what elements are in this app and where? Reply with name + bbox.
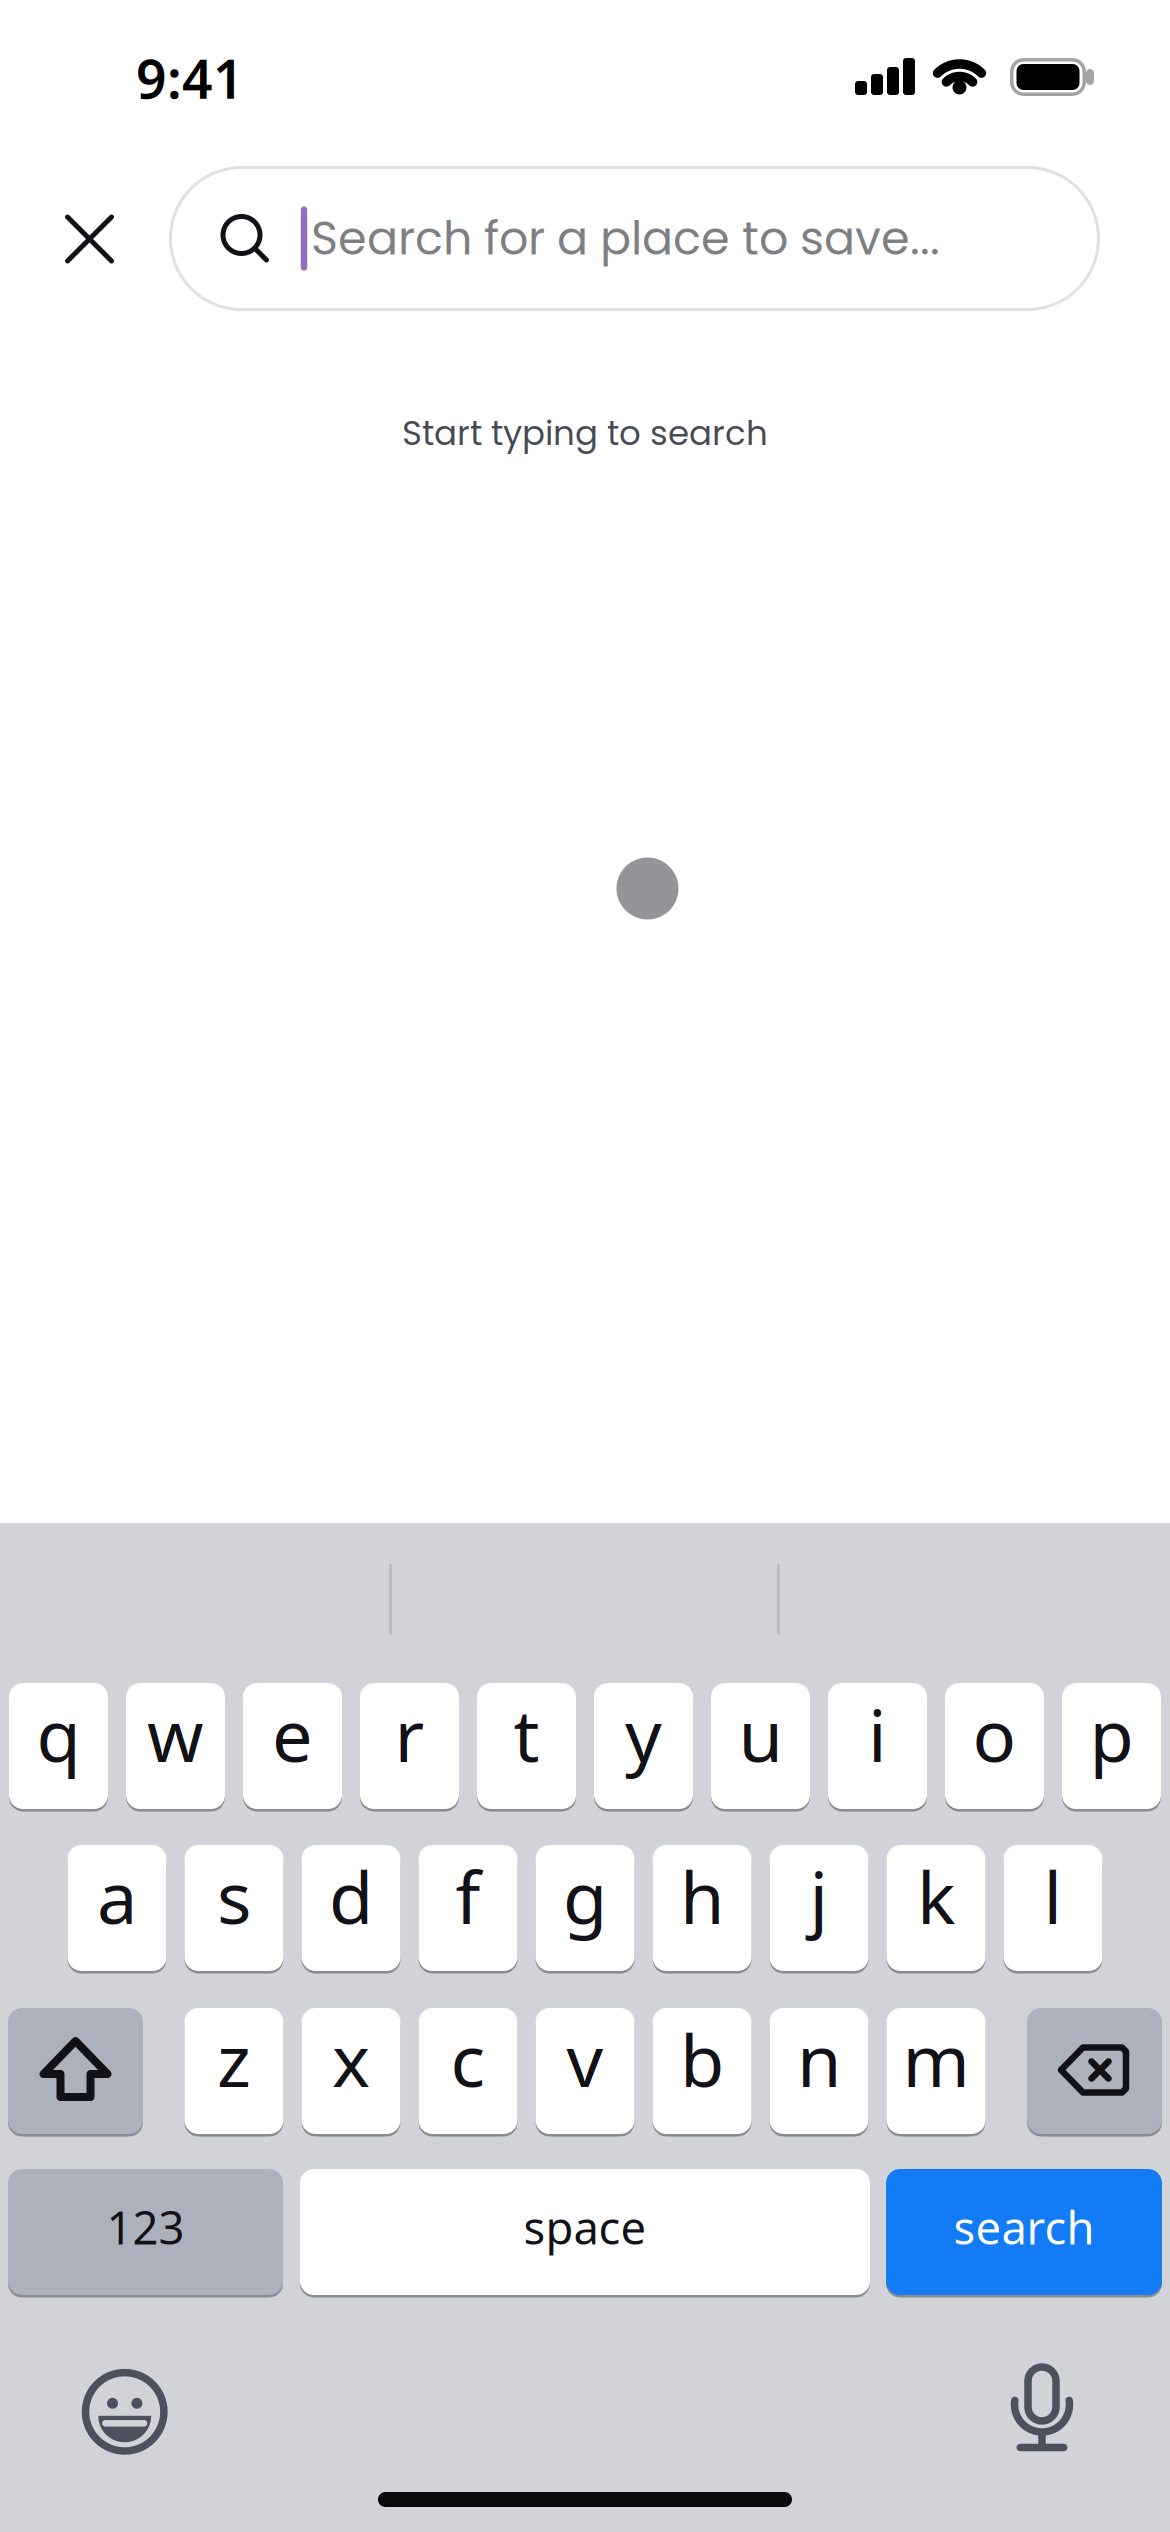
staticText: j <box>809 1848 828 1944</box>
button[interactable]: space <box>300 2167 870 2296</box>
staticText: b <box>680 2011 724 2107</box>
button[interactable]: j <box>769 1843 868 1972</box>
staticText: Search for a place to save... <box>311 206 940 271</box>
staticText: search <box>953 2197 1094 2257</box>
staticText: h <box>680 1848 724 1944</box>
button[interactable]: d <box>301 1843 400 1972</box>
staticText: space <box>523 2197 646 2257</box>
button[interactable]: q <box>9 1681 108 1810</box>
staticText: c <box>450 2011 485 2107</box>
staticText: q <box>36 1686 80 1782</box>
staticText: i <box>868 1686 887 1782</box>
button[interactable]: b <box>652 2006 751 2135</box>
button[interactable]: o <box>945 1681 1044 1810</box>
button[interactable]: Emoji <box>75 2362 175 2462</box>
button[interactable]: search <box>886 2167 1162 2296</box>
staticText: n <box>797 2011 841 2107</box>
button[interactable]: y <box>594 1681 693 1810</box>
button[interactable]: Delete <box>1027 2006 1162 2135</box>
button[interactable]: z <box>184 2006 283 2135</box>
staticText: a <box>97 1848 137 1944</box>
button[interactable]: h <box>652 1843 751 1972</box>
button[interactable]: g <box>535 1843 634 1972</box>
button[interactable]: n <box>769 2006 868 2135</box>
staticText: y <box>625 1686 662 1782</box>
button[interactable]: c <box>418 2006 517 2135</box>
button[interactable]: u <box>711 1681 810 1810</box>
staticText: v <box>566 2011 603 2107</box>
staticText: e <box>272 1686 313 1782</box>
staticText: z <box>217 2011 251 2107</box>
button[interactable]: t <box>477 1681 576 1810</box>
button[interactable]: Search for a place to save <box>169 166 1100 311</box>
button[interactable]: x <box>301 2006 400 2135</box>
staticText: 9:41 <box>136 43 244 113</box>
button[interactable]: l <box>1003 1843 1102 1972</box>
button[interactable]: m <box>886 2006 985 2135</box>
button[interactable]: k <box>886 1843 985 1972</box>
button[interactable]: e <box>243 1681 342 1810</box>
staticText: d <box>329 1848 373 1944</box>
staticText: l <box>1043 1848 1062 1944</box>
button[interactable]: 123 <box>8 2167 283 2296</box>
staticText: p <box>1089 1686 1133 1782</box>
button[interactable]: Close <box>59 209 119 269</box>
button[interactable]: p <box>1062 1681 1161 1810</box>
staticText: o <box>972 1686 1016 1782</box>
staticText: f <box>455 1848 480 1944</box>
button[interactable]: f <box>418 1843 517 1972</box>
button[interactable]: r <box>360 1681 459 1810</box>
button[interactable]: s <box>184 1843 283 1972</box>
button[interactable]: i <box>828 1681 927 1810</box>
staticText: r <box>394 1686 424 1782</box>
staticText: w <box>147 1686 204 1782</box>
button[interactable]: w <box>126 1681 225 1810</box>
staticText: Start typing to search <box>402 409 768 457</box>
staticText: g <box>563 1848 607 1944</box>
button[interactable]: a <box>67 1843 166 1972</box>
staticText: t <box>513 1686 539 1782</box>
staticText: k <box>917 1848 955 1944</box>
staticText: s <box>217 1848 251 1944</box>
button[interactable]: Shift <box>8 2006 143 2135</box>
button[interactable]: v <box>535 2006 634 2135</box>
staticText: x <box>332 2011 370 2107</box>
button[interactable]: Dictate <box>992 2353 1092 2463</box>
staticText: m <box>902 2011 969 2107</box>
staticText: 123 <box>106 2197 184 2257</box>
staticText: u <box>738 1686 782 1782</box>
